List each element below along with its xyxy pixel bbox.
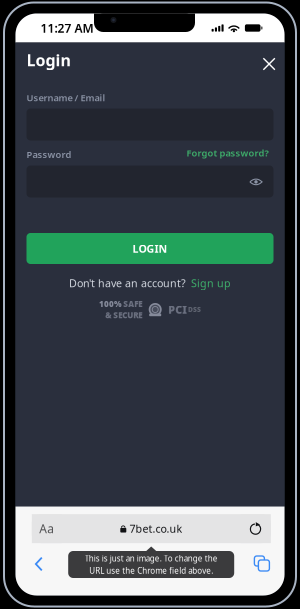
- staticText: PCI: [168, 302, 187, 317]
- staticText: Login: [26, 49, 70, 71]
- staticText: Username / Email: [26, 91, 105, 104]
- staticText: DSS: [188, 305, 201, 314]
- button[interactable]: Show password: [245, 171, 267, 193]
- staticText: LOGIN: [132, 241, 167, 256]
- button[interactable]: Close: [256, 51, 282, 77]
- button[interactable]: Text size: [32, 514, 62, 543]
- button[interactable]: Tabs: [244, 546, 276, 576]
- staticText: Forgot password?: [186, 147, 268, 159]
- staticText: Don't have an account?: [69, 276, 186, 290]
- staticText: Sign up: [191, 276, 231, 290]
- staticText: 11:27 AM: [40, 20, 93, 36]
- button[interactable]: Back: [23, 549, 55, 579]
- staticText: 100%: [99, 299, 122, 309]
- button[interactable]: Sign up: [191, 276, 231, 290]
- staticText: Aa: [39, 521, 54, 536]
- button[interactable]: Reload: [241, 514, 271, 543]
- staticText: & SECURE: [105, 310, 142, 320]
- button[interactable]: Forgot password?: [181, 146, 273, 159]
- staticText: SAFE: [123, 299, 142, 309]
- button[interactable]: LOGIN: [26, 233, 273, 264]
- staticText: URL use the Chrome field above.: [89, 565, 213, 576]
- staticText: This is just an image. To change the: [85, 553, 218, 564]
- staticText: 7bet.co.uk: [129, 521, 182, 536]
- staticText: Password: [26, 148, 71, 160]
